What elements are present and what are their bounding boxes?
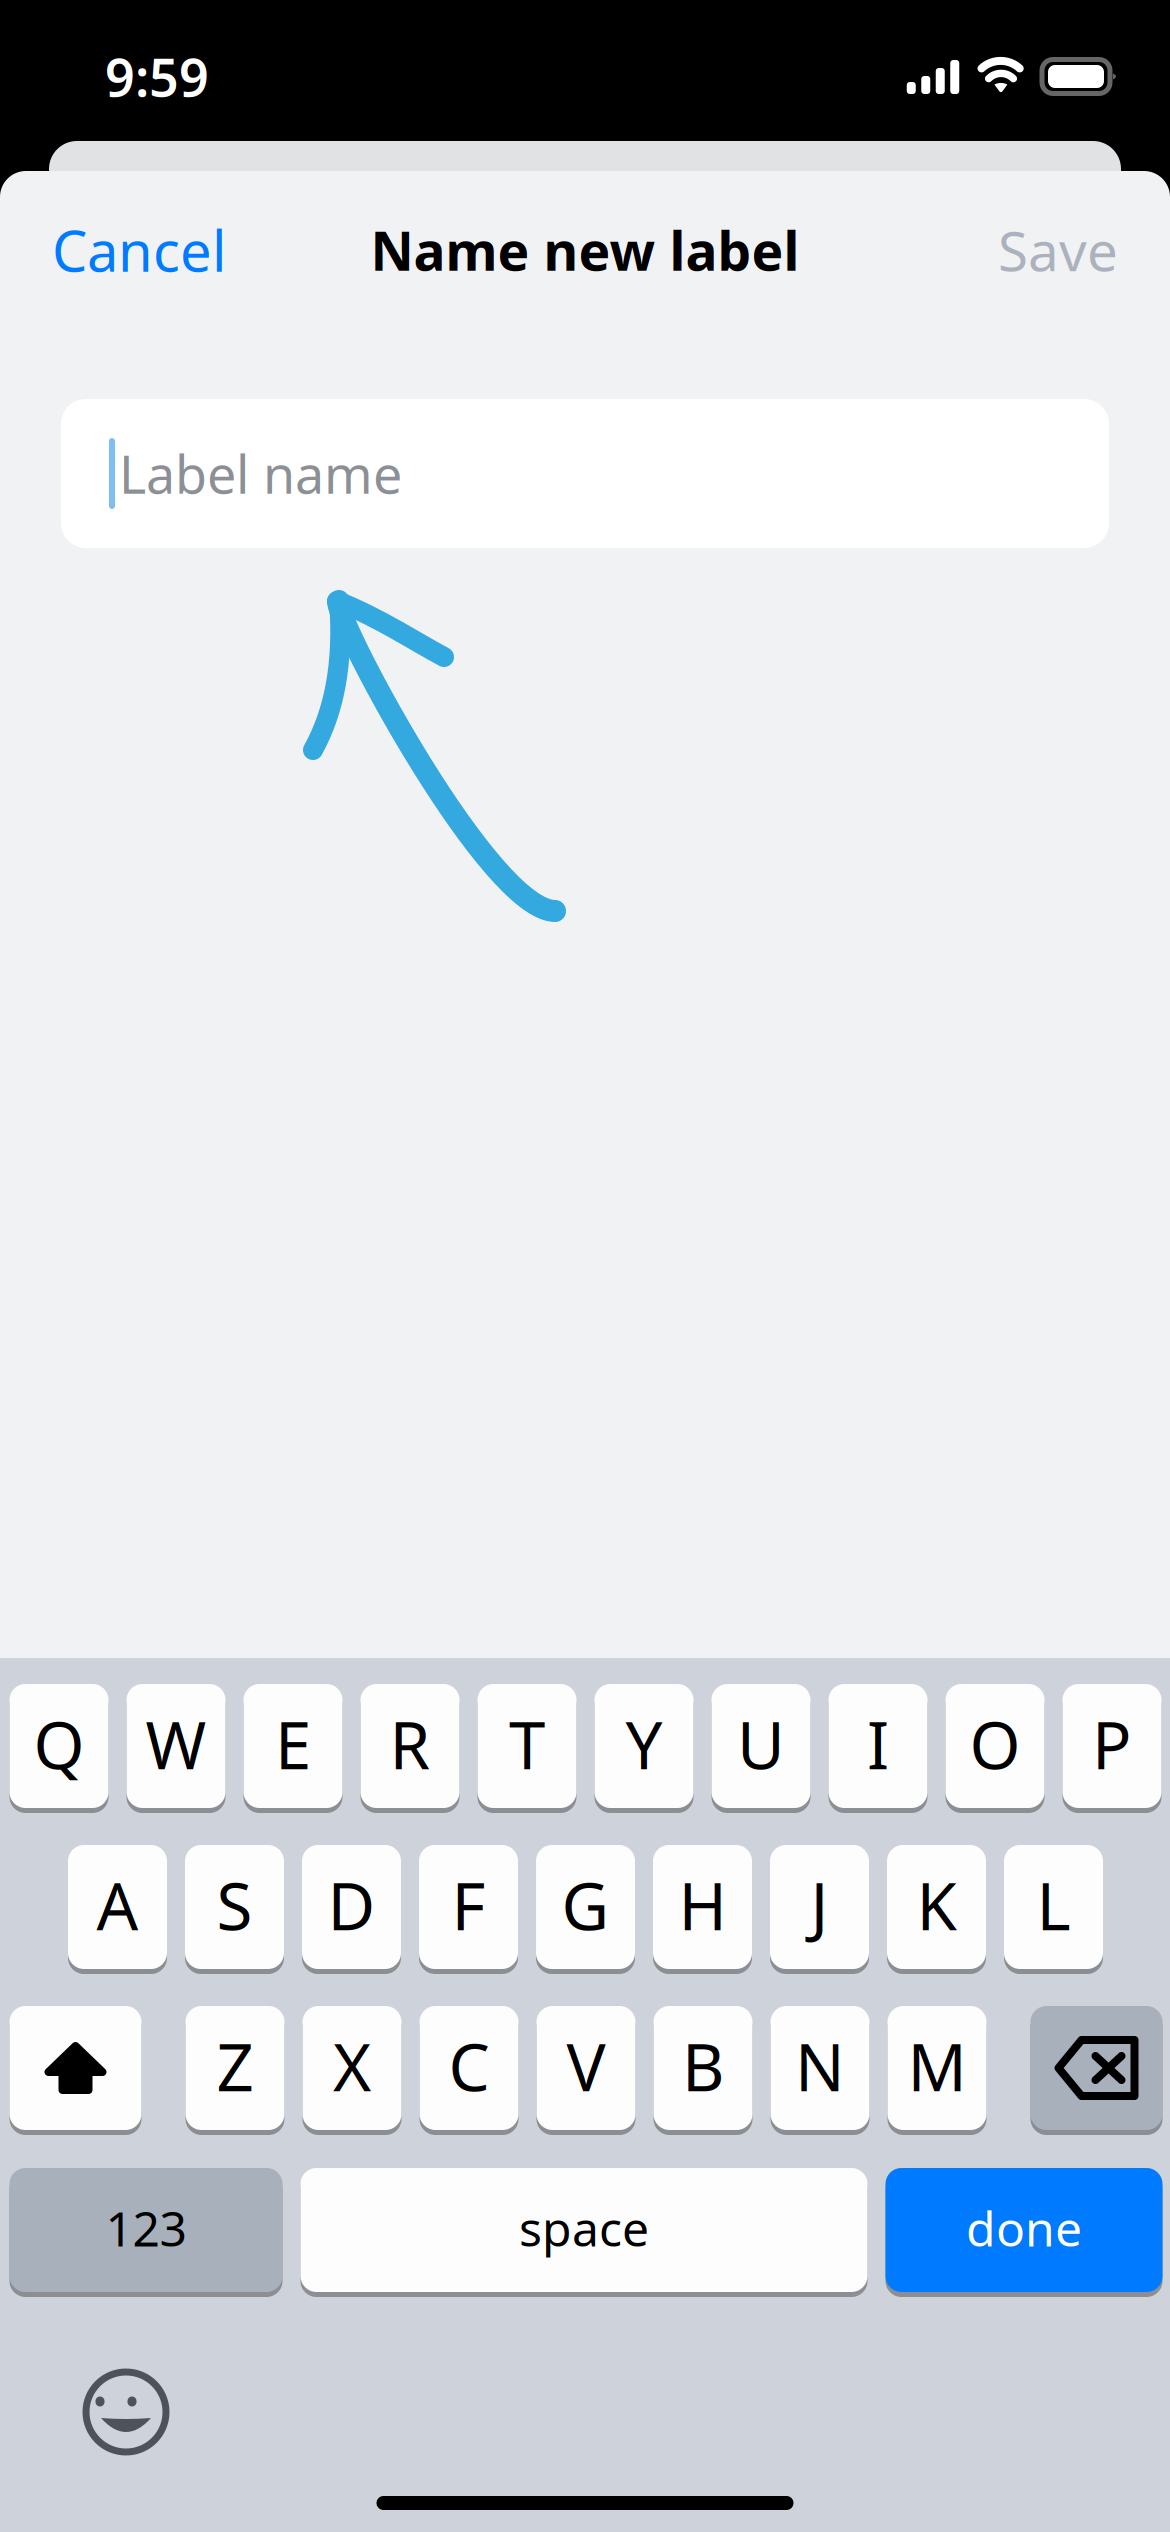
button[interactable]: X	[302, 2006, 401, 2135]
staticText: S	[216, 1862, 252, 1948]
staticText: Name new label	[370, 215, 799, 285]
staticText: Z	[216, 2023, 253, 2109]
staticText: done	[966, 2196, 1082, 2260]
staticText: A	[96, 1862, 138, 1948]
button[interactable]: N	[770, 2006, 869, 2135]
staticText: Label name	[119, 439, 402, 508]
staticText: W	[145, 1701, 206, 1787]
button[interactable]: Delete	[1030, 2006, 1162, 2135]
staticText: B	[682, 2023, 724, 2109]
button[interactable]: H	[653, 1845, 752, 1974]
staticText: N	[795, 2023, 845, 2109]
staticText: R	[389, 1701, 430, 1787]
button[interactable]: L	[1004, 1845, 1103, 1974]
button[interactable]: G	[536, 1845, 635, 1974]
button[interactable]: Label name	[61, 399, 1109, 548]
button[interactable]: E	[243, 1684, 342, 1813]
button[interactable]: D	[302, 1845, 401, 1974]
button[interactable]: C	[419, 2006, 518, 2135]
staticText: C	[448, 2023, 489, 2109]
button[interactable]: I	[828, 1684, 927, 1813]
button[interactable]: space	[300, 2168, 867, 2297]
staticText: K	[916, 1862, 956, 1948]
button[interactable]: P	[1062, 1684, 1161, 1813]
staticText: Save	[998, 214, 1118, 286]
button[interactable]: done	[885, 2168, 1162, 2297]
staticText: E	[275, 1701, 311, 1787]
staticText: Cancel	[52, 213, 226, 287]
button[interactable]: Emoji keyboard	[64, 2350, 188, 2474]
button[interactable]: K	[887, 1845, 986, 1974]
button[interactable]: J	[770, 1845, 869, 1974]
staticText: V	[566, 2023, 605, 2109]
button[interactable]: Cancel	[34, 189, 244, 311]
button[interactable]: 123	[9, 2168, 282, 2297]
button[interactable]: W	[126, 1684, 225, 1813]
staticText: T	[509, 1701, 545, 1787]
button[interactable]: A	[68, 1845, 167, 1974]
staticText: U	[737, 1701, 785, 1787]
button[interactable]: Z	[185, 2006, 284, 2135]
button[interactable]: V	[536, 2006, 635, 2135]
button[interactable]: O	[945, 1684, 1044, 1813]
staticText: M	[907, 2023, 966, 2109]
button[interactable]: S	[185, 1845, 284, 1974]
staticText: G	[561, 1862, 609, 1948]
staticText: L	[1036, 1862, 1070, 1948]
staticText: 123	[105, 2196, 186, 2260]
button[interactable]: B	[653, 2006, 752, 2135]
staticText: Y	[625, 1701, 662, 1787]
staticText: space	[519, 2196, 649, 2260]
staticText: F	[451, 1862, 485, 1948]
button[interactable]: Save	[980, 190, 1136, 310]
button[interactable]: Shift	[9, 2006, 141, 2135]
staticText: J	[810, 1862, 828, 1948]
staticText: D	[327, 1862, 375, 1948]
staticText: P	[1092, 1701, 1132, 1787]
button[interactable]: Q	[9, 1684, 108, 1813]
button[interactable]: Y	[594, 1684, 693, 1813]
button[interactable]: F	[419, 1845, 518, 1974]
button[interactable]: R	[360, 1684, 459, 1813]
button[interactable]: M	[887, 2006, 986, 2135]
staticText: H	[678, 1862, 726, 1948]
button[interactable]: U	[711, 1684, 810, 1813]
staticText: I	[867, 1701, 889, 1787]
staticText: X	[333, 2023, 371, 2109]
staticText: O	[969, 1701, 1020, 1787]
button[interactable]: T	[477, 1684, 576, 1813]
staticText: 9:59	[105, 42, 209, 111]
staticText: Q	[33, 1701, 84, 1787]
